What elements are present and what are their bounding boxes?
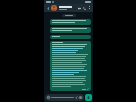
button[interactable]: Contact avatar: [51, 5, 57, 11]
other: Camera: [79, 96, 82, 99]
button[interactable]: Send voice message: [85, 94, 92, 101]
button[interactable]: More options: [87, 6, 91, 10]
other: Attach: [75, 96, 78, 99]
button[interactable]: [50, 41, 91, 91]
button[interactable]: [50, 19, 91, 25]
button[interactable]: Attach: [45, 94, 84, 101]
button[interactable]: Video call: [77, 6, 82, 11]
button[interactable]: Back: [46, 6, 51, 11]
button[interactable]: [59, 6, 77, 10]
button[interactable]: [50, 27, 91, 33]
button[interactable]: [50, 35, 91, 39]
button[interactable]: Voice call: [82, 6, 87, 11]
